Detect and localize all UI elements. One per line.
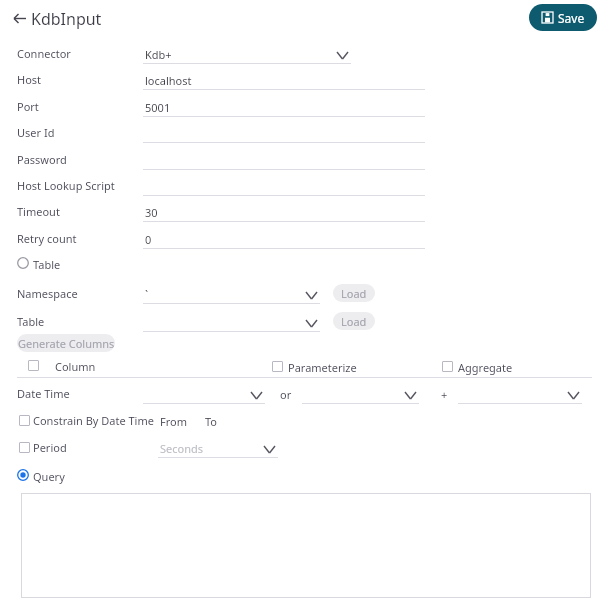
button[interactable] xyxy=(17,257,29,269)
button[interactable] xyxy=(143,286,320,306)
button[interactable] xyxy=(143,386,265,406)
button[interactable] xyxy=(442,361,453,372)
button[interactable]: Back xyxy=(6,5,32,31)
staticText: Aggregate xyxy=(458,360,513,375)
button[interactable] xyxy=(143,99,425,119)
staticText: Generate Columns xyxy=(18,336,115,351)
button[interactable]: Generate Columns xyxy=(17,334,115,352)
button[interactable] xyxy=(19,415,30,426)
button[interactable] xyxy=(143,204,425,224)
staticText: Date Time xyxy=(17,386,70,401)
staticText: or xyxy=(280,387,292,402)
button[interactable] xyxy=(143,178,425,198)
button[interactable] xyxy=(143,152,425,172)
staticText: Namespace xyxy=(17,286,78,301)
staticText: KdbInput xyxy=(31,8,102,30)
staticText: Timeout xyxy=(17,204,60,219)
button[interactable] xyxy=(458,386,582,406)
staticText: To xyxy=(205,414,218,429)
staticText: Load xyxy=(341,314,367,329)
button[interactable]: Load xyxy=(333,312,375,330)
staticText: Table xyxy=(17,314,45,329)
staticText: localhost xyxy=(145,73,192,88)
staticText: Seconds xyxy=(160,441,204,456)
button[interactable] xyxy=(19,442,30,453)
button[interactable] xyxy=(17,469,29,481)
staticText: Password xyxy=(17,152,67,167)
button[interactable] xyxy=(21,493,591,598)
staticText: 30 xyxy=(145,205,158,220)
staticText: Constrain By Date Time xyxy=(33,413,154,428)
button[interactable] xyxy=(143,314,320,334)
button[interactable] xyxy=(302,386,419,406)
staticText: Host xyxy=(17,72,42,87)
staticText: 0 xyxy=(145,232,152,247)
staticText: Query xyxy=(33,469,65,484)
staticText: Host Lookup Script xyxy=(17,178,115,193)
staticText: From xyxy=(160,414,187,429)
staticText: Retry count xyxy=(17,231,77,246)
staticText: Load xyxy=(341,286,367,301)
staticText: Period xyxy=(33,440,67,455)
button[interactable] xyxy=(143,231,425,251)
staticText: Connector xyxy=(17,46,71,61)
button[interactable] xyxy=(28,360,39,371)
staticText: User Id xyxy=(17,125,55,140)
button[interactable]: Save xyxy=(529,4,597,31)
staticText: 5001 xyxy=(145,100,171,115)
button[interactable] xyxy=(272,361,283,372)
button[interactable] xyxy=(143,72,425,92)
button[interactable] xyxy=(143,46,351,66)
staticText: Column xyxy=(55,359,96,374)
button[interactable]: Load xyxy=(333,284,375,302)
staticText: Table xyxy=(33,257,61,272)
staticText: ` xyxy=(145,287,149,302)
staticText: Save xyxy=(558,10,585,26)
button[interactable] xyxy=(158,440,278,460)
staticText: Port xyxy=(17,99,39,114)
staticText: + xyxy=(441,387,448,402)
staticText: Kdb+ xyxy=(145,47,172,62)
button[interactable] xyxy=(143,125,425,145)
staticText: Parameterize xyxy=(288,360,357,375)
